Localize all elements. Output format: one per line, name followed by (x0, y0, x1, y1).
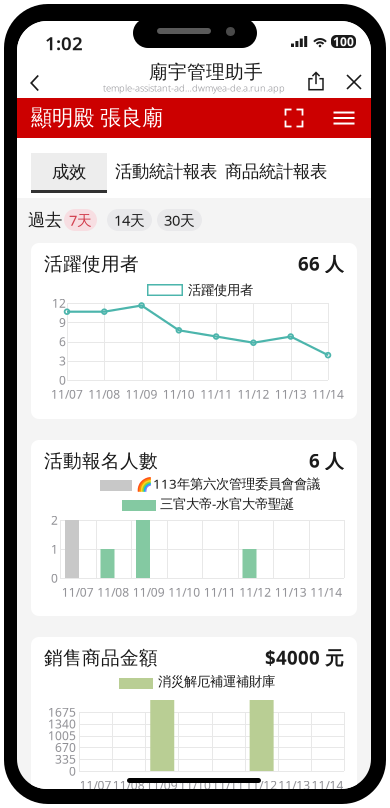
staticText: 11/12 (239, 584, 271, 600)
staticText: 活躍使用者 (44, 252, 139, 275)
staticText: $4000 元 (265, 645, 344, 670)
staticText: 66 人 (298, 251, 344, 276)
staticText: 6 (59, 333, 66, 349)
staticText: 顯明殿 張良廟 (31, 105, 163, 131)
staticText: 活動統計報表 (115, 161, 217, 182)
button[interactable]: Close (340, 70, 368, 94)
staticText: 11/08 (113, 777, 145, 793)
staticText: 1:02 (45, 31, 83, 55)
staticText: 三官大帝-水官大帝聖誕 (160, 495, 294, 512)
staticText: 0 (51, 570, 58, 586)
staticText: 1005 (48, 728, 76, 743)
staticText: 11/07 (80, 777, 112, 793)
staticText: 11/08 (97, 584, 129, 600)
staticText: 🌈113年第六次管理委員會會議 (136, 475, 320, 492)
staticText: 活躍使用者 (188, 282, 253, 298)
staticText: 活動報名人數 (44, 449, 158, 472)
staticText: 1675 (48, 704, 76, 720)
button[interactable]: Fullscreen (278, 105, 310, 131)
button[interactable]: Share (302, 68, 330, 94)
staticText: temple-assistant-ad…dwmyea-de.a.run.app (103, 82, 285, 94)
staticText: 11/14 (312, 386, 344, 402)
staticText: 11/07 (51, 386, 83, 402)
staticText: 12 (52, 295, 66, 311)
staticText: 11/08 (88, 386, 120, 402)
staticText: 11/11 (212, 777, 244, 793)
staticText: 商品統計報表 (225, 161, 327, 182)
button[interactable]: Menu (329, 107, 359, 129)
staticText: 3 (59, 353, 66, 369)
staticText: 11/09 (126, 386, 158, 402)
staticText: 11/10 (163, 386, 195, 402)
staticText: 7天 (69, 210, 92, 230)
button[interactable]: 30天 (157, 209, 202, 231)
button[interactable]: 14天 (107, 209, 152, 231)
staticText: 335 (55, 751, 76, 767)
button[interactable]: 活動統計報表 (116, 153, 216, 190)
staticText: 成效 (52, 161, 86, 183)
staticText: 11/12 (245, 777, 277, 793)
staticText: 670 (55, 739, 76, 755)
staticText: 11/10 (168, 584, 200, 600)
staticText: 2 (51, 512, 58, 528)
staticText: 11/07 (62, 584, 94, 600)
staticText: 11/14 (310, 584, 342, 600)
staticText: 14天 (114, 210, 145, 230)
staticText: 6 人 (309, 448, 344, 473)
staticText: 廟宇管理助手 (149, 60, 263, 83)
staticText: 100 (333, 33, 354, 49)
staticText: 11/13 (275, 386, 307, 402)
staticText: 1340 (48, 716, 76, 732)
staticText: 30天 (164, 210, 195, 230)
staticText: 11/13 (275, 584, 307, 600)
button[interactable]: 成效 (31, 153, 107, 193)
staticText: 消災解厄補運補財庫 (158, 673, 275, 690)
button[interactable]: 7天 (64, 209, 97, 231)
staticText: 11/12 (237, 386, 269, 402)
staticText: 0 (69, 763, 76, 779)
staticText: 銷售商品金額 (44, 646, 158, 669)
staticText: 1 (51, 541, 58, 557)
button[interactable]: Back (18, 70, 52, 96)
button[interactable]: 商品統計報表 (226, 153, 326, 190)
staticText: 過去 (28, 209, 62, 231)
staticText: 11/14 (311, 777, 343, 793)
staticText: 11/10 (179, 777, 211, 793)
staticText: 11/11 (204, 584, 236, 600)
staticText: 11/13 (278, 777, 310, 793)
staticText: 11/09 (133, 584, 165, 600)
staticText: 11/11 (200, 386, 232, 402)
staticText: 0 (59, 372, 66, 388)
staticText: 11/09 (146, 777, 178, 793)
staticText: 9 (59, 314, 66, 330)
